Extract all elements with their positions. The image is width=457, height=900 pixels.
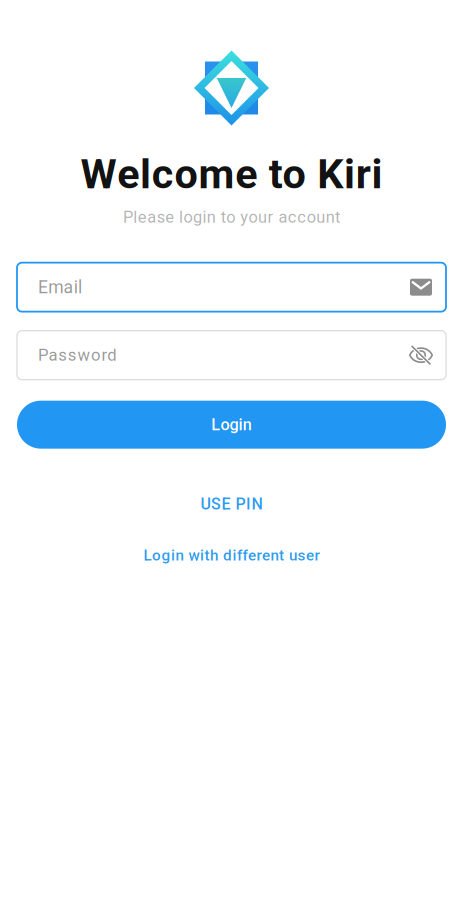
staticText: Email xyxy=(38,277,82,297)
button[interactable]: USE PIN xyxy=(186,490,276,518)
staticText: Login xyxy=(211,415,252,434)
staticText: Please login to your account xyxy=(123,207,340,227)
staticText: Password xyxy=(38,345,116,365)
staticText: Welcome to Kiri xyxy=(80,150,383,198)
button[interactable]: Login xyxy=(17,401,446,449)
button[interactable]: Login with different user xyxy=(121,541,341,569)
staticText: USE PIN xyxy=(200,495,262,513)
staticText: Login with different user xyxy=(143,546,319,564)
